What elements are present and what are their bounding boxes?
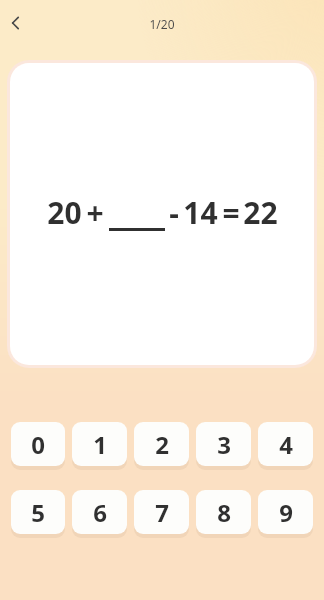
staticText: +	[86, 192, 104, 233]
staticText: 7	[155, 496, 169, 529]
staticText: 1/20	[149, 16, 175, 32]
button[interactable]: 7	[134, 490, 189, 538]
button[interactable]: 6	[72, 490, 127, 538]
button[interactable]: Answer blank	[109, 195, 165, 231]
button[interactable]: 4	[258, 422, 313, 470]
staticText: 20	[47, 192, 82, 233]
button[interactable]: 8	[196, 490, 251, 538]
button[interactable]: 3	[196, 422, 251, 470]
staticText: 4	[279, 428, 293, 461]
staticText: 3	[217, 428, 231, 461]
staticText: 8	[217, 496, 231, 529]
staticText: 6	[93, 496, 107, 529]
staticText: 1	[93, 428, 107, 461]
staticText: 2	[155, 428, 169, 461]
staticText: =	[222, 192, 240, 233]
staticText: 0	[31, 428, 45, 461]
button[interactable]: 9	[258, 490, 313, 538]
staticText: 14	[183, 192, 218, 233]
button[interactable]: 1	[72, 422, 127, 470]
button[interactable]: 5	[11, 490, 65, 538]
staticText: -	[169, 192, 179, 233]
staticText: 9	[279, 496, 293, 529]
button[interactable]: Back	[0, 5, 34, 41]
button[interactable]: 2	[134, 422, 189, 470]
button[interactable]: 0	[11, 422, 65, 470]
staticText: 22	[243, 192, 278, 233]
staticText: 5	[31, 496, 45, 529]
